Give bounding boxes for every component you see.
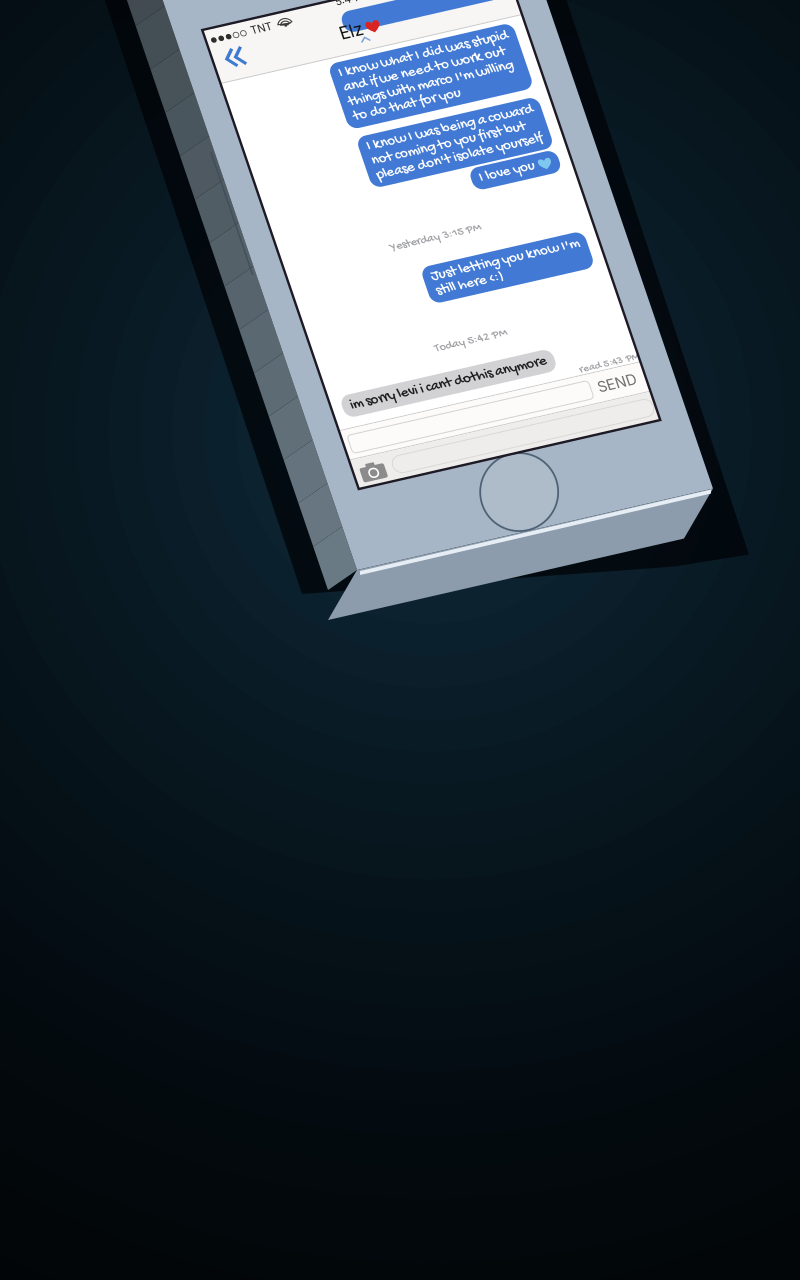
staticText: I know I was being a coward xyxy=(119,143,290,160)
staticText: to do that for you xyxy=(116,111,226,128)
staticText: 5:44 PM xyxy=(136,0,179,9)
staticText: read 5:43 PM xyxy=(249,412,310,425)
staticText: things with marco I'm willing xyxy=(116,96,285,113)
staticText: not coming to you first but xyxy=(119,158,277,176)
staticText: and if we need to work out xyxy=(116,80,282,98)
staticText: I love you xyxy=(216,199,273,216)
staticText: SEND xyxy=(261,430,301,448)
staticText: Just letting you know I'm xyxy=(138,285,290,302)
button[interactable]: SEND xyxy=(258,428,304,450)
staticText: I know what I did was stupid xyxy=(116,65,290,82)
staticText: Yesterday 3:15 PM xyxy=(108,249,201,263)
staticText: please don't isolate yourself xyxy=(119,174,289,191)
staticText: Elz xyxy=(130,24,154,45)
staticText: im sorry levi i cant dothis anymore xyxy=(19,393,221,410)
